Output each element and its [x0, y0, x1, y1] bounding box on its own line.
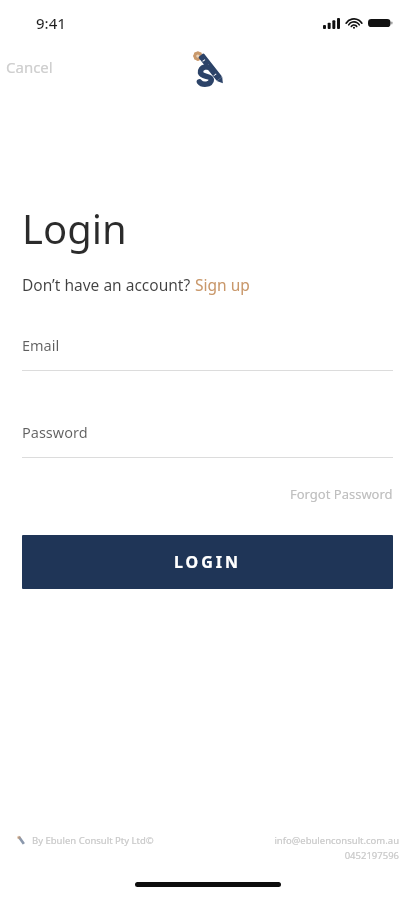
staticText: By Ebulen Consult Pty Ltd© — [32, 834, 154, 847]
staticText: 9:41 — [36, 13, 66, 33]
button[interactable]: Cancel — [0, 51, 63, 83]
staticText: Password — [22, 422, 88, 442]
staticText: LOGIN — [174, 551, 242, 573]
button[interactable]: Email — [22, 335, 393, 371]
button[interactable]: Password — [22, 422, 393, 458]
button[interactable]: Sign up — [195, 274, 250, 295]
staticText: 0452197596 — [344, 849, 399, 862]
button[interactable]: LOGIN — [22, 535, 393, 589]
button[interactable]: Forgot Password — [22, 485, 393, 503]
staticText: Don’t have an account? — [22, 274, 195, 295]
staticText: Cancel — [6, 57, 53, 77]
staticText: Sign up — [195, 274, 250, 295]
staticText: Login — [22, 201, 127, 255]
other: Ebulen logo — [186, 46, 230, 88]
staticText: Email — [22, 335, 60, 355]
staticText: info@ebulenconsult.com.au — [274, 834, 399, 847]
staticText: Forgot Password — [290, 485, 393, 503]
